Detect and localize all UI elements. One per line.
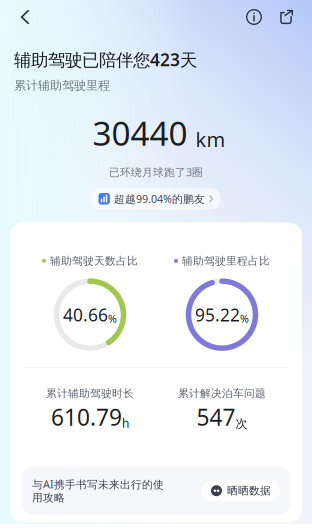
staticText: 累计辅助驾驶时长 bbox=[46, 387, 134, 400]
staticText: 累计解决泊车问题 bbox=[178, 387, 266, 400]
staticText: 超越99.04%的鹏友 bbox=[114, 192, 205, 206]
staticText: 40.66 bbox=[63, 303, 108, 326]
button[interactable]: 与AI携手书写未来出行的使用攻略 bbox=[22, 467, 290, 514]
staticText: 辅助驾驶已陪伴您423天 bbox=[14, 48, 197, 71]
staticText: 610.79 bbox=[51, 402, 122, 432]
staticText: 已环绕月球跑了3圈 bbox=[109, 165, 203, 179]
staticText: km bbox=[195, 126, 225, 153]
staticText: % bbox=[108, 311, 117, 326]
staticText: h bbox=[122, 415, 129, 431]
staticText: 547 bbox=[196, 402, 235, 432]
staticText: 辅助驾驶里程占比 bbox=[182, 254, 270, 267]
staticText: 与AI携手书写未来出行的使用攻略 bbox=[32, 477, 164, 504]
button[interactable]: Share bbox=[270, 0, 302, 35]
staticText: 次 bbox=[235, 416, 247, 431]
button[interactable]: 超越99.04%的鹏友 bbox=[91, 188, 221, 209]
staticText: 95.22 bbox=[195, 303, 240, 326]
staticText: 辅助驾驶天数占比 bbox=[50, 254, 138, 267]
button[interactable]: Back bbox=[7, 0, 43, 35]
staticText: 晒晒数据 bbox=[227, 484, 271, 497]
button[interactable]: Info bbox=[238, 0, 270, 35]
staticText: % bbox=[240, 311, 249, 326]
staticText: 30440 bbox=[92, 111, 187, 155]
staticText: 累计辅助驾驶里程 bbox=[14, 78, 110, 93]
